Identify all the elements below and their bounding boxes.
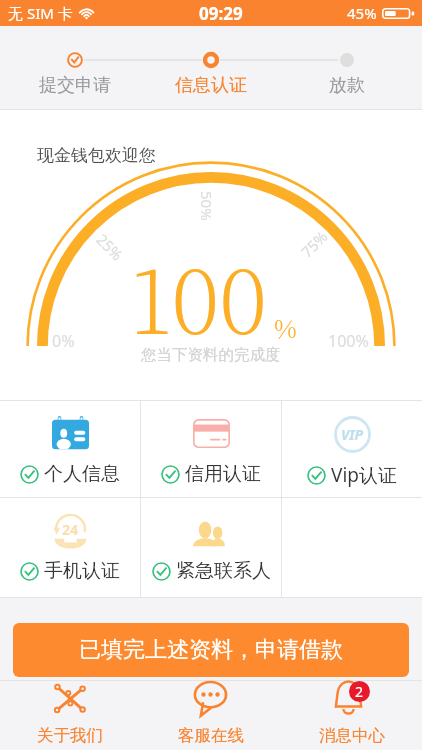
staticText: 提交申请	[39, 74, 111, 97]
button[interactable]: 紧急联系人	[141, 498, 281, 597]
button[interactable]: VIP	[282, 401, 422, 497]
staticText: 24	[62, 520, 79, 539]
staticText: 信用认证	[185, 462, 261, 486]
staticText: 客服在线	[178, 725, 244, 746]
button[interactable]: 信用认证	[141, 401, 281, 497]
staticText: %	[274, 309, 297, 345]
staticText: 100%	[328, 330, 369, 352]
staticText: 100	[130, 233, 268, 359]
staticText: 2	[355, 682, 364, 701]
other: Message center	[332, 680, 371, 716]
staticText: 0%	[52, 330, 75, 352]
staticText: 已填完上述资料，申请借款	[79, 636, 343, 664]
button[interactable]: 已填完上述资料，申请借款	[13, 623, 409, 677]
button[interactable]: 个人信息	[0, 401, 140, 497]
staticText: 关于我们	[37, 725, 103, 746]
staticText: 无 SIM 卡	[8, 3, 73, 23]
other: Online support	[193, 680, 228, 716]
staticText: 45%	[347, 3, 377, 23]
staticText: 放款	[329, 74, 365, 97]
staticText: 25%	[92, 229, 128, 265]
staticText: 信息认证	[175, 74, 247, 97]
staticText: VIP	[341, 425, 364, 444]
staticText: 75%	[296, 226, 332, 262]
staticText: Vip认证	[331, 462, 397, 488]
staticText: 个人信息	[44, 462, 120, 486]
button[interactable]: 24	[0, 498, 140, 597]
staticText: 消息中心	[319, 725, 385, 746]
staticText: 您当下资料的完成度	[141, 345, 281, 365]
staticText: 09:29	[199, 2, 243, 25]
other: About us	[53, 680, 87, 716]
staticText: 手机认证	[44, 559, 120, 583]
staticText: 现金钱包欢迎您	[37, 145, 156, 166]
staticText: 紧急联系人	[176, 559, 271, 583]
button[interactable]: Message center	[281, 680, 422, 750]
staticText: 50%	[197, 191, 217, 221]
button[interactable]: Online support	[140, 680, 281, 750]
button[interactable]: About us	[0, 680, 140, 750]
